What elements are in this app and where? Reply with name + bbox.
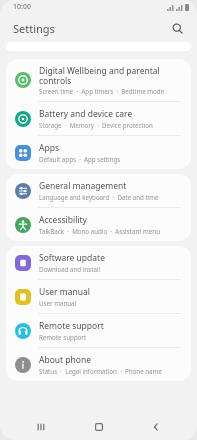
button[interactable]: General management <box>6 174 191 207</box>
button[interactable]: Battery and device care <box>6 102 191 135</box>
staticText: Download and install <box>39 265 101 273</box>
staticText: Default apps · App settings <box>39 155 121 163</box>
button[interactable]: Remote support <box>6 314 191 347</box>
staticText: User manual <box>39 299 77 307</box>
staticText: Apps <box>39 142 59 154</box>
staticText: About phone <box>39 354 92 366</box>
staticText: Screen time · App timers · Bedtime mode <box>39 87 165 95</box>
staticText: Language and keyboard · Date and time <box>39 193 159 201</box>
staticText: Digital Wellbeing and parental controls <box>39 65 160 86</box>
staticText: 10:00 <box>13 2 31 12</box>
button[interactable]: Home <box>82 414 116 440</box>
button[interactable]: Accessibility <box>6 208 191 241</box>
button[interactable]: Digital Wellbeing and parental controls <box>6 59 191 101</box>
staticText: Status · Legal information · Phone name <box>39 367 162 375</box>
button[interactable]: Back <box>139 414 173 440</box>
staticText: User manual <box>39 286 90 298</box>
staticText: General management <box>39 180 127 192</box>
staticText: Battery and device care <box>39 108 133 120</box>
staticText: Software update <box>39 252 105 264</box>
button[interactable]: Software update <box>6 246 191 279</box>
staticText: TalkBack · Mono audio · Assistant menu <box>39 227 160 235</box>
button[interactable]: Apps <box>6 136 191 169</box>
staticText: Remote support <box>39 333 87 341</box>
staticText: Remote support <box>39 320 104 332</box>
button[interactable]: User manual <box>6 280 191 313</box>
staticText: Accessibility <box>39 214 87 226</box>
button[interactable]: Recents <box>24 414 58 440</box>
button[interactable]: About phone <box>6 348 191 381</box>
staticText: Storage · Memory · Device protection <box>39 121 153 129</box>
button[interactable]: Search <box>167 18 187 38</box>
staticText: Settings <box>13 21 55 36</box>
